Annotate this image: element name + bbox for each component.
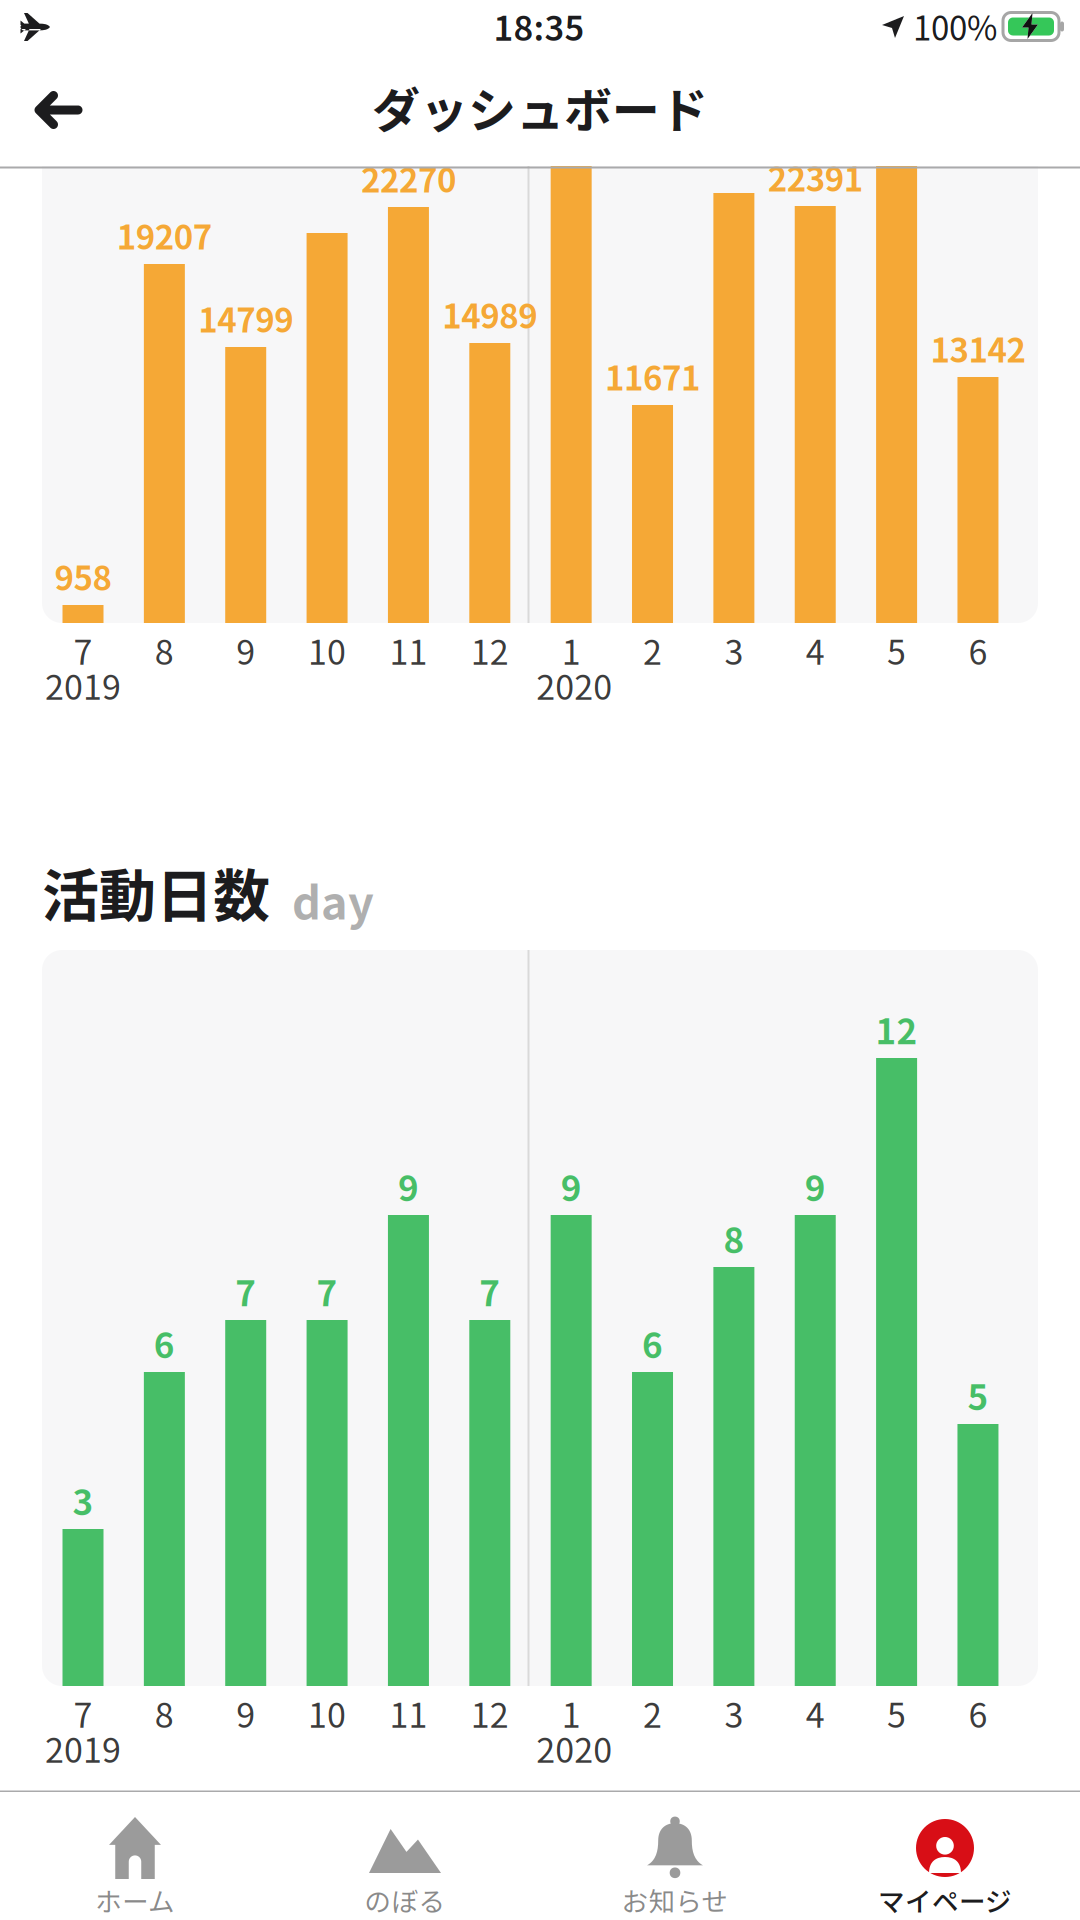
staticText: 4 bbox=[806, 625, 825, 675]
staticText: 8 bbox=[723, 1213, 744, 1263]
staticText: 100% bbox=[913, 2, 997, 50]
button[interactable]: お知らせ bbox=[540, 1796, 810, 1916]
staticText: 2019 bbox=[45, 1723, 121, 1773]
button[interactable]: マイページ bbox=[810, 1796, 1080, 1916]
staticText: 9 bbox=[805, 1161, 826, 1211]
staticText: のぼる bbox=[364, 1881, 445, 1919]
staticText: 8 bbox=[155, 1688, 174, 1738]
staticText: 22391 bbox=[768, 153, 863, 201]
staticText: 6 bbox=[968, 1688, 987, 1738]
staticText: 7 bbox=[479, 1266, 500, 1316]
staticText: 5 bbox=[887, 625, 906, 675]
staticText: 13142 bbox=[930, 324, 1025, 372]
staticText: 14989 bbox=[442, 290, 537, 338]
staticText: 6 bbox=[968, 625, 987, 675]
staticText: ダッシュボード bbox=[372, 72, 708, 142]
staticText: お知らせ bbox=[621, 1881, 728, 1919]
staticText: 11671 bbox=[605, 352, 700, 400]
staticText: 12 bbox=[471, 1688, 509, 1738]
staticText: 5 bbox=[967, 1370, 988, 1420]
staticText: 12 bbox=[876, 1004, 918, 1054]
staticText: 活動日数 bbox=[42, 851, 270, 933]
staticText: 11 bbox=[389, 625, 427, 675]
staticText: 6 bbox=[642, 1318, 663, 1368]
staticText: 8 bbox=[155, 625, 174, 675]
staticText: 1 bbox=[562, 1688, 581, 1738]
staticText: 2 bbox=[643, 1688, 662, 1738]
staticText: 10 bbox=[308, 625, 346, 675]
staticText: 5 bbox=[887, 1688, 906, 1738]
staticText: 3 bbox=[724, 1688, 743, 1738]
staticText: 19207 bbox=[117, 211, 212, 259]
button[interactable]: ホーム bbox=[0, 1796, 270, 1916]
staticText: 7 bbox=[235, 1266, 256, 1316]
staticText: 9 bbox=[236, 1688, 255, 1738]
staticText: 4 bbox=[806, 1688, 825, 1738]
staticText: 11 bbox=[389, 1688, 427, 1738]
staticText: 958 bbox=[54, 552, 111, 600]
staticText: 2019 bbox=[45, 660, 121, 710]
staticText: マイページ bbox=[878, 1881, 1012, 1919]
staticText: 7 bbox=[317, 1266, 338, 1316]
staticText: 9 bbox=[561, 1161, 582, 1211]
staticText: 10 bbox=[308, 1688, 346, 1738]
staticText: 18:35 bbox=[493, 1, 584, 51]
staticText: 3 bbox=[72, 1475, 93, 1525]
staticText: 3 bbox=[724, 625, 743, 675]
staticText: 9 bbox=[236, 625, 255, 675]
staticText: 7 bbox=[73, 625, 92, 675]
staticText: 2020 bbox=[536, 660, 612, 710]
staticText: 1 bbox=[562, 625, 581, 675]
staticText: 6 bbox=[154, 1318, 175, 1368]
staticText: day bbox=[292, 867, 374, 933]
button[interactable]: Back bbox=[17, 70, 97, 150]
staticText: 14799 bbox=[198, 294, 293, 342]
staticText: 2020 bbox=[536, 1723, 612, 1773]
button[interactable]: のぼる bbox=[270, 1796, 540, 1916]
staticText: ホーム bbox=[95, 1881, 175, 1919]
staticText: 9 bbox=[398, 1161, 419, 1211]
staticText: 12 bbox=[471, 625, 509, 675]
staticText: 22270 bbox=[361, 154, 456, 202]
staticText: 7 bbox=[73, 1688, 92, 1738]
staticText: 2 bbox=[643, 625, 662, 675]
